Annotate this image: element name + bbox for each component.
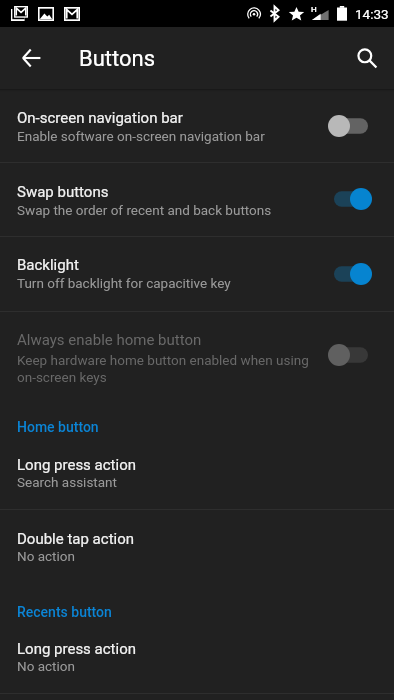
staticText: Long press action [17,640,136,658]
button[interactable]: Always enable home button [0,311,394,410]
button[interactable]: Long press action [0,619,394,694]
button[interactable]: Long press action [0,435,394,510]
button[interactable]: Search [343,34,391,82]
staticText: H [311,5,317,14]
staticText: Keep hardware home button enabled when u… [17,352,309,385]
staticText: Backlight [17,256,79,274]
staticText: Recents button [17,604,112,620]
staticText: Buttons [79,46,156,72]
staticText: Long press action [17,456,136,474]
button[interactable]: Swap buttons [0,162,394,236]
staticText: No action [17,548,75,564]
staticText: Search assistant [17,474,117,490]
button[interactable]: Backlight [0,236,394,311]
staticText: On-screen navigation bar [17,109,183,127]
staticText: Always enable home button [17,331,202,349]
staticText: No action [17,658,75,674]
button[interactable]: Back [7,34,55,82]
staticText: Swap the order of recent and back button… [17,202,272,218]
staticText: Double tap action [17,530,135,548]
staticText: Turn off backlight for capacitive key [17,275,231,291]
button[interactable]: Double tap action [0,509,394,584]
button[interactable]: On-screen navigation bar [0,89,394,162]
staticText: Home button [17,419,99,435]
staticText: 14:33 [355,6,389,22]
staticText: Swap buttons [17,183,109,201]
staticText: Enable software on-screen navigation bar [17,128,265,144]
